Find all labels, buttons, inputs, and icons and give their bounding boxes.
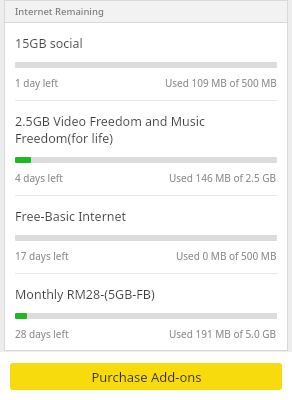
staticText: Free-Basic Internet: [15, 208, 127, 225]
staticText: Used 109 MB of 500 MB: [165, 76, 277, 90]
staticText: 15GB social: [15, 35, 83, 52]
staticText: 28 days left: [15, 327, 69, 341]
staticText: 2.5GB Video Freedom and Music Freedom(fo…: [15, 113, 277, 147]
button[interactable]: Free-Basic Internet: [4, 196, 288, 273]
staticText: Used 146 MB of 2.5 GB: [169, 171, 277, 185]
button[interactable]: Monthly RM28-(5GB-FB): [4, 274, 288, 351]
staticText: 1 day left: [15, 76, 59, 90]
button[interactable]: 2.5GB Video Freedom and Music Freedom(fo…: [4, 101, 288, 195]
staticText: 17 days left: [15, 249, 69, 263]
staticText: Used 0 MB of 500 MB: [176, 249, 277, 263]
button[interactable]: 15GB social: [4, 23, 288, 100]
staticText: 4 days left: [15, 171, 63, 185]
staticText: Purchase Add-ons: [91, 368, 202, 386]
staticText: Monthly RM28-(5GB-FB): [15, 286, 155, 303]
staticText: Internet Remaining: [15, 5, 104, 18]
button[interactable]: Purchase Add-ons: [10, 363, 282, 390]
staticText: Used 191 MB of 5.0 GB: [169, 327, 277, 341]
